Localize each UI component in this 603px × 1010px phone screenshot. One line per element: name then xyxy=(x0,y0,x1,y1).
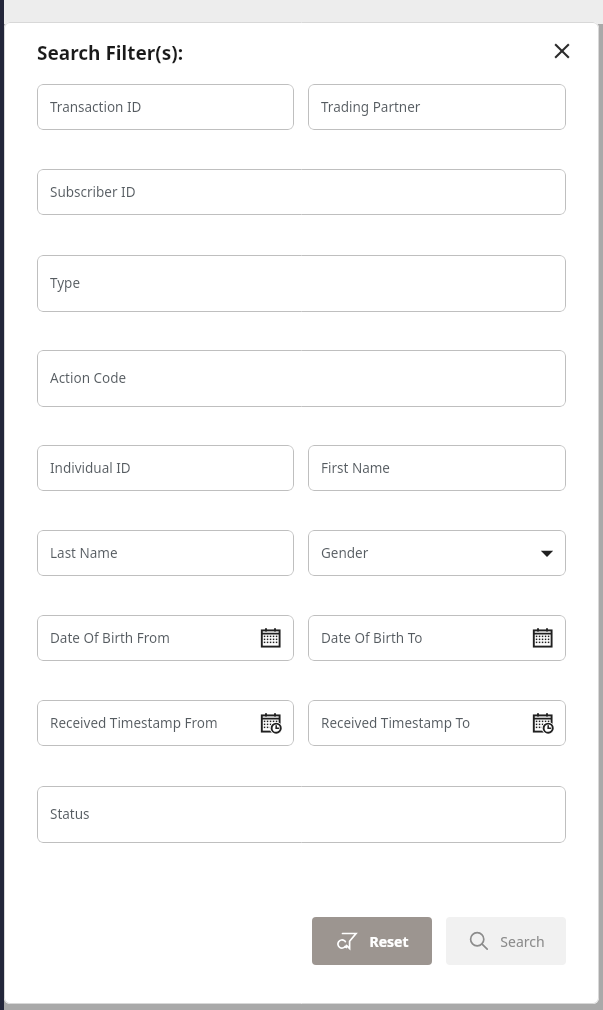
button[interactable]: Received Timestamp To xyxy=(308,700,566,746)
staticText: Transaction ID xyxy=(50,98,282,116)
staticText: Date Of Birth From xyxy=(50,629,260,647)
staticText: Action Code xyxy=(50,369,127,387)
button[interactable]: Transaction ID xyxy=(37,84,294,130)
staticText: Subscriber ID xyxy=(50,183,554,201)
button[interactable]: Trading Partner xyxy=(308,84,566,130)
button[interactable]: Search xyxy=(446,917,566,965)
button[interactable]: Subscriber ID xyxy=(37,169,566,215)
button[interactable]: Date Of Birth From xyxy=(37,615,294,661)
button[interactable]: Gender xyxy=(308,530,566,576)
button[interactable]: Individual ID xyxy=(37,445,294,491)
staticText: Gender xyxy=(321,544,540,562)
button[interactable]: Status xyxy=(37,786,566,843)
staticText: Type xyxy=(50,274,81,292)
staticText: Reset xyxy=(369,932,409,951)
button[interactable]: Action Code xyxy=(37,350,566,407)
staticText: Last Name xyxy=(50,544,282,562)
button[interactable]: Last Name xyxy=(37,530,294,576)
button[interactable]: Type xyxy=(37,255,566,312)
staticText: Received Timestamp From xyxy=(50,714,260,732)
staticText: Search xyxy=(500,932,545,951)
staticText: Status xyxy=(50,805,90,823)
staticText: Individual ID xyxy=(50,459,282,477)
staticText: Date Of Birth To xyxy=(321,629,532,647)
staticText: Received Timestamp To xyxy=(321,714,532,732)
button[interactable]: Date Of Birth To xyxy=(308,615,566,661)
button[interactable]: Received Timestamp From xyxy=(37,700,294,746)
button[interactable]: Reset xyxy=(312,917,432,965)
staticText: First Name xyxy=(321,459,554,477)
staticText: Trading Partner xyxy=(321,98,554,116)
staticText: Search Filter(s): xyxy=(37,40,184,66)
button[interactable]: First Name xyxy=(308,445,566,491)
button[interactable]: Close xyxy=(547,36,577,66)
